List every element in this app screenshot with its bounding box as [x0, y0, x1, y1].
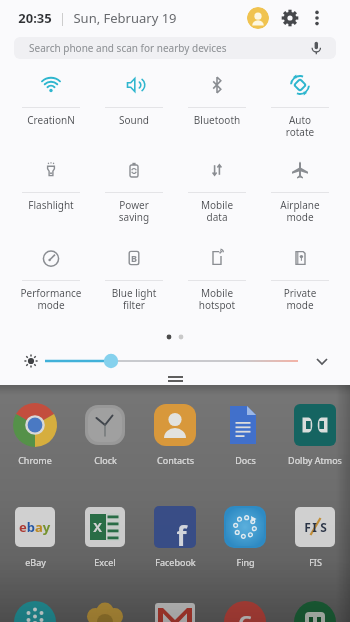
button[interactable]: X [70, 505, 140, 568]
staticText: Auto rotate [260, 113, 340, 139]
staticText: Contacts [157, 454, 194, 466]
button[interactable]: G [210, 600, 280, 622]
button[interactable]: Flashlight [9, 158, 92, 233]
staticText: Private mode [260, 286, 340, 312]
staticText: X [93, 518, 102, 536]
button[interactable]: Dolby Atmos [280, 403, 350, 466]
staticText: eBay [25, 556, 46, 568]
staticText: ebay [19, 518, 51, 536]
button[interactable] [13, 600, 57, 622]
button[interactable] [83, 600, 127, 622]
staticText: Chrome [18, 454, 52, 466]
button[interactable] [247, 7, 269, 29]
button[interactable]: Search phone and scan for nearby devices [14, 37, 336, 59]
button[interactable] [281, 9, 299, 27]
button[interactable]: Contacts [140, 403, 210, 466]
staticText: Fing [236, 556, 255, 568]
staticText: Airplane mode [260, 198, 340, 224]
staticText: Docs [235, 454, 256, 466]
staticText: G [238, 609, 253, 622]
staticText: Sun, February 19 [73, 9, 177, 27]
button[interactable]: Airplane mode [258, 158, 341, 233]
button[interactable]: Chrome [0, 403, 70, 466]
button[interactable] [13, 403, 57, 447]
button[interactable] [312, 351, 332, 371]
button[interactable] [308, 9, 326, 27]
staticText: Blue light filter [94, 286, 174, 312]
staticText: Mobile data [177, 198, 257, 224]
button[interactable]: f [153, 505, 197, 549]
button[interactable]: Fing [210, 505, 280, 568]
staticText: Search phone and scan for nearby devices [29, 41, 227, 55]
staticText: Performance mode [11, 286, 91, 312]
button[interactable] [70, 600, 140, 622]
button[interactable]: Docs [210, 403, 280, 466]
staticText: Sound [94, 113, 174, 127]
button[interactable] [168, 376, 183, 382]
button[interactable] [153, 600, 197, 622]
staticText: CreationN [11, 113, 91, 127]
button[interactable]: G [223, 600, 267, 622]
button[interactable]: Private mode [258, 246, 341, 321]
button[interactable]: F [280, 505, 350, 568]
button[interactable]: ebay [13, 505, 57, 549]
staticText: B [131, 252, 137, 264]
button[interactable]: F [293, 505, 337, 549]
staticText: FIS [309, 556, 322, 568]
staticText: S [320, 519, 327, 535]
button[interactable]: Performance mode [9, 246, 92, 321]
staticText: Flashlight [11, 198, 91, 212]
button[interactable] [153, 403, 197, 447]
button[interactable] [45, 348, 298, 374]
button[interactable]: Auto rotate [258, 73, 341, 148]
button[interactable] [293, 600, 337, 622]
staticText: Mobile hotspot [177, 286, 257, 312]
button[interactable]: Power saving [92, 158, 175, 233]
button[interactable]: ebay [0, 505, 70, 568]
staticText: 20:35 [18, 9, 52, 27]
button[interactable] [223, 505, 267, 549]
button[interactable] [140, 600, 210, 622]
staticText: | [59, 10, 66, 26]
staticText: Facebook [155, 556, 196, 568]
button[interactable]: CreationN [9, 73, 92, 148]
staticText: Power saving [94, 198, 174, 224]
staticText: Clock [94, 454, 117, 466]
button[interactable] [293, 403, 337, 447]
button[interactable] [23, 353, 39, 369]
button[interactable]: f [140, 505, 210, 568]
button[interactable]: Sound [92, 73, 175, 148]
staticText: F [304, 519, 311, 535]
button[interactable]: Mobile data [175, 158, 258, 233]
button[interactable]: Clock [70, 403, 140, 466]
staticText: f [176, 518, 187, 553]
button[interactable] [223, 403, 267, 447]
button[interactable] [280, 600, 350, 622]
staticText: I [312, 519, 317, 535]
button[interactable]: Mobile hotspot [175, 246, 258, 321]
button[interactable] [83, 403, 127, 447]
button[interactable]: X [83, 505, 127, 549]
staticText: Dolby Atmos [288, 454, 342, 466]
button[interactable] [0, 600, 70, 622]
staticText: Excel [94, 556, 116, 568]
button[interactable]: B [92, 246, 175, 321]
button[interactable]: Bluetooth [175, 73, 258, 148]
staticText: Bluetooth [177, 113, 257, 127]
